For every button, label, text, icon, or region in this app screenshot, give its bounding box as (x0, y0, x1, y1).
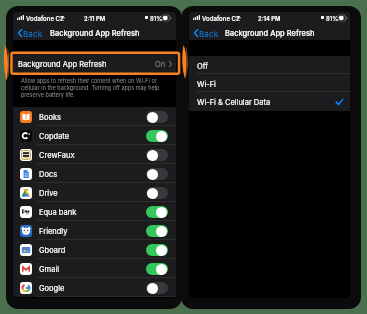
staticText: Wi-Fi (197, 80, 216, 89)
staticText: Books (39, 113, 61, 122)
staticText: Docs (39, 170, 58, 179)
staticText: Copdate (39, 132, 70, 141)
button[interactable]: On (146, 225, 168, 237)
staticText: Friendly (39, 227, 68, 236)
staticText: Equa bank (39, 208, 77, 217)
button[interactable]: Copdate (13, 126, 176, 145)
button[interactable]: Friendly (13, 221, 176, 240)
button[interactable]: Gmail (13, 259, 176, 278)
button[interactable]: Docs (13, 164, 176, 183)
button[interactable]: CrewFaux (13, 145, 176, 164)
button[interactable]: Off (146, 168, 168, 180)
staticText: Wi-Fi & Cellular Data (197, 98, 271, 107)
button[interactable]: Background App Refresh (13, 54, 176, 73)
staticText: Off (197, 62, 208, 71)
button[interactable]: Google (13, 278, 176, 297)
button[interactable]: Gboard (13, 240, 176, 259)
staticText: Google (39, 284, 65, 293)
button[interactable]: Books (13, 107, 176, 126)
staticText: Back (23, 29, 43, 39)
button[interactable]: On (146, 263, 168, 275)
button[interactable]: Wi-Fi (189, 74, 350, 92)
button[interactable]: On (146, 130, 168, 142)
staticText: 81% (150, 15, 163, 22)
button[interactable]: Wi-Fi & Cellular Data (189, 92, 350, 110)
button[interactable]: Off (146, 282, 168, 294)
button[interactable]: Equa bank (13, 202, 176, 221)
button[interactable]: Off (146, 111, 168, 123)
button[interactable]: On (146, 206, 168, 218)
staticText: Background App Refresh (225, 29, 315, 38)
staticText: On (155, 60, 166, 69)
button[interactable]: Drive (13, 183, 176, 202)
staticText: Allow apps to refresh their content when… (21, 78, 168, 99)
staticText: CrewFaux (39, 151, 75, 160)
button[interactable]: On (146, 244, 168, 256)
staticText: 2:11 PM (84, 15, 106, 22)
button[interactable]: Back (193, 26, 220, 40)
button[interactable]: Back (17, 26, 44, 40)
staticText: Gboard (39, 246, 66, 255)
staticText: Vodafone CZ (202, 15, 240, 22)
staticText: Vodafone CZ (26, 15, 64, 22)
staticText: Back (199, 29, 219, 39)
staticText: 81% (326, 15, 339, 22)
staticText: Background App Refresh (50, 29, 140, 38)
button[interactable]: Off (146, 149, 168, 161)
staticText: Drive (39, 189, 58, 198)
button[interactable]: Off (146, 187, 168, 199)
staticText: Background App Refresh (18, 60, 107, 69)
staticText: 2:14 PM (258, 15, 281, 22)
button[interactable]: Off (189, 56, 350, 74)
staticText: Gmail (39, 265, 60, 274)
